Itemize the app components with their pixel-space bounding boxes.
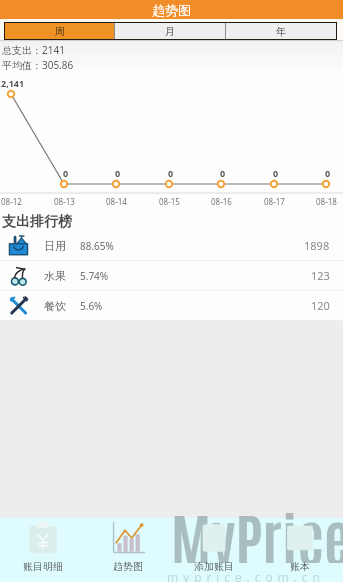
staticText: 120 [311,298,330,313]
staticText: 0 [220,167,226,179]
staticText: 周 [55,25,65,38]
staticText: 账本 [290,560,310,573]
staticText: 08-14 [106,196,127,207]
button[interactable]: 水果 [0,261,343,290]
button[interactable]: 年 [226,23,336,39]
button[interactable]: 餐饮 [0,291,343,320]
staticText: 0 [63,167,69,179]
staticText: 08-18 [316,196,337,207]
staticText: 1898 [304,238,330,253]
staticText: 餐饮 [44,299,66,313]
button[interactable]: 账目明细 [0,518,85,582]
button[interactable]: 月 [115,23,225,39]
staticText: 月 [165,25,175,38]
staticText: 趋势图 [152,2,191,18]
staticText: 0 [168,167,174,179]
staticText: myprice.com.cn [167,569,325,582]
staticText: 日用 [44,239,66,253]
staticText: 年 [276,25,286,38]
staticText: MyPrice [171,499,343,563]
staticText: 2,141 [1,77,25,89]
staticText: 总支出：2141 [2,43,65,57]
staticText: 08-12 [1,196,22,207]
staticText: 08-17 [264,196,285,207]
staticText: 0 [325,167,331,179]
staticText: 08-15 [159,196,180,207]
staticText: 添加账目 [194,560,234,573]
staticText: 趋势图 [113,560,143,573]
staticText: 08-13 [54,196,75,207]
staticText: 平均值：305.86 [2,58,74,71]
staticText: 5.74% [80,269,109,283]
staticText: 水果 [44,269,66,283]
staticText: 0 [115,167,121,179]
staticText: 08-16 [211,196,232,207]
button[interactable]: 账本 [257,518,343,582]
staticText: 支出排行榜 [2,213,72,231]
staticText: 账目明细 [23,560,63,573]
staticText: 5.6% [80,299,103,313]
button[interactable]: 周 [5,23,114,39]
staticText: 88.65% [80,239,114,253]
staticText: 123 [311,268,330,283]
button[interactable]: 日用 [0,231,343,260]
staticText: 0 [273,167,279,179]
button[interactable]: 添加账目 [171,518,257,582]
button[interactable]: 趋势图 [85,518,171,582]
